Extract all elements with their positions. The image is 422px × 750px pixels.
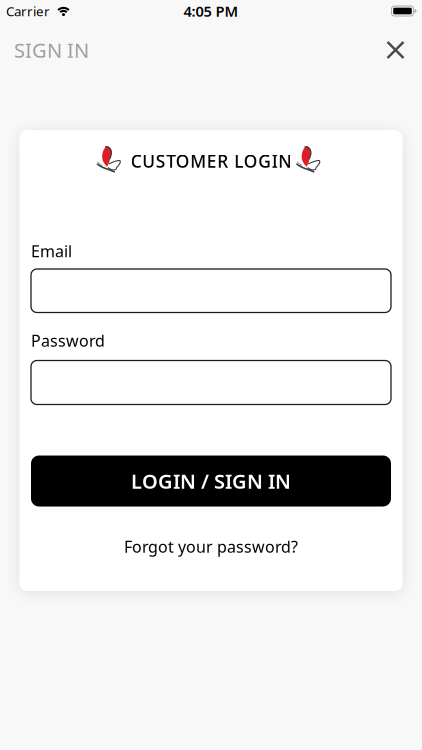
- staticText: Carrier: [6, 2, 50, 20]
- button[interactable]: Email text field: [31, 269, 391, 312]
- button[interactable]: Forgot your password?: [124, 535, 298, 557]
- staticText: SIGN IN: [14, 37, 89, 63]
- button[interactable]: LOGIN / SIGN IN: [31, 455, 391, 506]
- button[interactable]: Password text field: [31, 360, 391, 404]
- staticText: LOGIN / SIGN IN: [131, 468, 291, 494]
- button[interactable]: Close: [378, 32, 413, 67]
- staticText: CUSTOMER LOGIN: [131, 149, 291, 172]
- staticText: 4:05 PM: [183, 1, 238, 21]
- staticText: Email: [31, 240, 72, 262]
- staticText: Password: [31, 330, 105, 351]
- staticText: Forgot your password?: [124, 536, 298, 557]
